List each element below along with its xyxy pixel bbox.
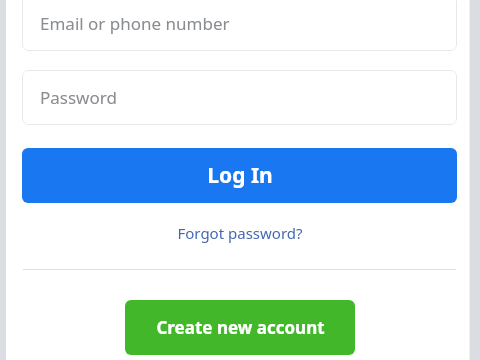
button[interactable]: Create new account: [125, 300, 355, 355]
button[interactable]: Password: [22, 70, 457, 125]
button[interactable]: Log In: [22, 148, 457, 203]
staticText: Forgot password?: [177, 223, 303, 243]
staticText: Email or phone number: [40, 12, 230, 35]
staticText: Password: [40, 86, 117, 109]
staticText: Create new account: [156, 316, 325, 339]
button[interactable]: Forgot password?: [22, 216, 457, 250]
button[interactable]: Email or phone number: [22, 0, 457, 51]
staticText: Log In: [207, 161, 273, 190]
